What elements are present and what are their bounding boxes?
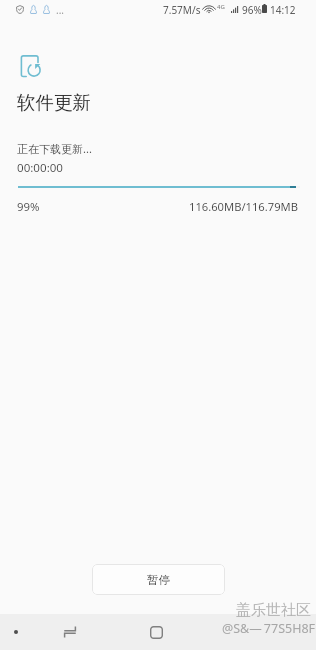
button[interactable]: 暂停: [92, 564, 225, 595]
staticText: 软件更新: [17, 91, 91, 114]
staticText: ...: [56, 3, 65, 17]
staticText: 14:12: [270, 3, 296, 17]
staticText: 116.60MB/116.79MB: [189, 199, 298, 214]
staticText: @S&— 77S5H8F: [222, 620, 316, 637]
button[interactable]: Home: [140, 614, 172, 650]
staticText: 99%: [17, 199, 40, 215]
button[interactable]: Recent apps: [53, 614, 85, 650]
staticText: 暂停: [147, 573, 170, 587]
staticText: 盖乐世社区: [236, 601, 311, 620]
staticText: 4G: [217, 3, 225, 11]
staticText: 正在下载更新...: [17, 141, 92, 156]
staticText: 96%: [242, 3, 262, 17]
staticText: 7.57M/s: [163, 3, 201, 17]
button[interactable]: Back: [0, 614, 32, 650]
staticText: 00:00:00: [17, 160, 64, 176]
